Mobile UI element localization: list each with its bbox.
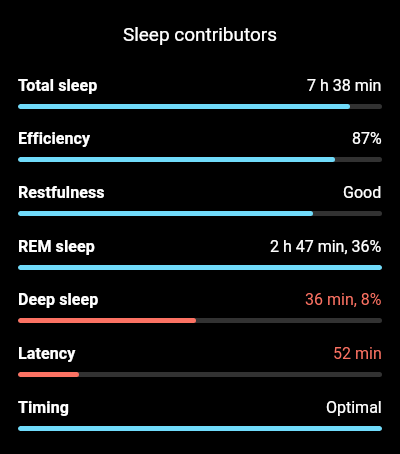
staticText: Latency bbox=[18, 344, 76, 363]
staticText: Total sleep bbox=[18, 76, 98, 95]
staticText: 87% bbox=[352, 129, 382, 148]
button[interactable]: REM sleep bbox=[0, 237, 400, 270]
staticText: Optimal bbox=[326, 398, 382, 417]
staticText: 52 min bbox=[333, 344, 382, 363]
staticText: Restfulness bbox=[18, 183, 105, 202]
button[interactable]: Restfulness bbox=[0, 183, 400, 216]
button[interactable]: Deep sleep bbox=[0, 290, 400, 323]
staticText: Good bbox=[343, 183, 382, 202]
staticText: 2 h 47 min, 36% bbox=[270, 237, 382, 256]
staticText: Deep sleep bbox=[18, 290, 99, 309]
staticText: Timing bbox=[18, 398, 69, 417]
button[interactable]: Latency bbox=[0, 344, 400, 377]
button[interactable]: Total sleep bbox=[0, 76, 400, 109]
button[interactable]: Efficiency bbox=[0, 129, 400, 162]
staticText: REM sleep bbox=[18, 237, 95, 256]
button[interactable]: Timing bbox=[0, 398, 400, 431]
staticText: Sleep contributors bbox=[0, 23, 400, 45]
staticText: 7 h 38 min bbox=[307, 76, 382, 95]
staticText: Efficiency bbox=[18, 129, 91, 148]
staticText: 36 min, 8% bbox=[305, 290, 382, 309]
